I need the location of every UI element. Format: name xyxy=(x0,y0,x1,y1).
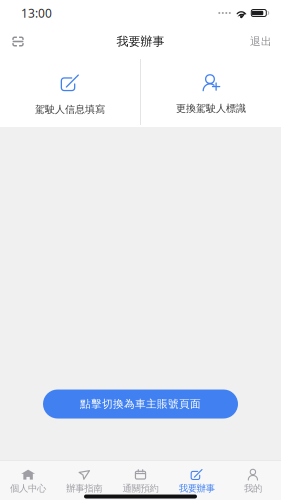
staticText: 退出 xyxy=(250,35,272,48)
staticText: 點擊切換為車主賬號頁面 xyxy=(80,397,201,411)
staticText: 13:00 xyxy=(21,5,52,21)
button[interactable]: 我要辦事 xyxy=(169,461,225,493)
button[interactable]: 退出 xyxy=(245,26,277,56)
staticText: 駕駛人信息填寫 xyxy=(35,103,105,116)
staticText: 我要辦事 xyxy=(179,483,215,494)
staticText: 更換駕駛人標識 xyxy=(176,102,246,115)
staticText: 通關預約 xyxy=(122,483,158,494)
staticText: 辦事指南 xyxy=(66,483,102,494)
button[interactable]: 駕駛人信息填寫 xyxy=(0,57,140,127)
staticText: 我的 xyxy=(244,483,262,494)
button[interactable]: 我的 xyxy=(225,461,281,493)
button[interactable]: Scan xyxy=(4,26,32,56)
button[interactable]: 通關預約 xyxy=(112,461,169,493)
staticText: 個人中心 xyxy=(10,483,46,494)
button[interactable]: 辦事指南 xyxy=(56,461,112,493)
button[interactable]: 點擊切換為車主賬號頁面 xyxy=(43,389,238,418)
button[interactable]: 個人中心 xyxy=(0,461,56,493)
button[interactable]: 更換駕駛人標識 xyxy=(141,57,281,127)
staticText: 我要辦事 xyxy=(116,34,164,49)
